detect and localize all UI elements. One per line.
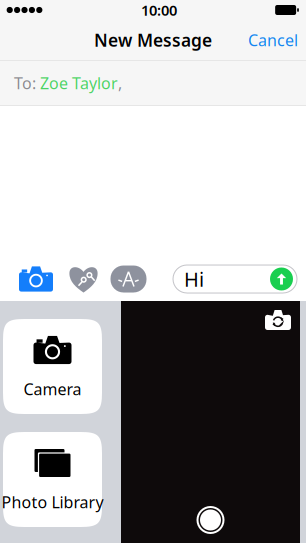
staticText: Cancel: [248, 29, 298, 51]
button[interactable]: Take photo: [196, 506, 224, 534]
staticText: New Message: [94, 28, 212, 51]
staticText: Zoe Taylor: [36, 72, 118, 94]
staticText: Camera: [23, 378, 81, 400]
button[interactable]: Camera: [3, 319, 102, 414]
staticText: ,: [118, 72, 122, 94]
staticText: Hi: [184, 266, 204, 292]
button[interactable]: Photo Library: [3, 432, 102, 527]
staticText: To:: [14, 72, 36, 94]
button[interactable]: Flip camera: [265, 301, 300, 330]
button[interactable]: Cancel: [234, 20, 306, 60]
button[interactable]: Camera: [11, 257, 61, 301]
button[interactable]: Digital Touch: [61, 257, 106, 301]
button[interactable]: Send: [268, 266, 294, 292]
staticText: Photo Library: [1, 491, 103, 513]
staticText: 10:00: [141, 0, 177, 20]
button[interactable]: App Store: [106, 257, 151, 301]
